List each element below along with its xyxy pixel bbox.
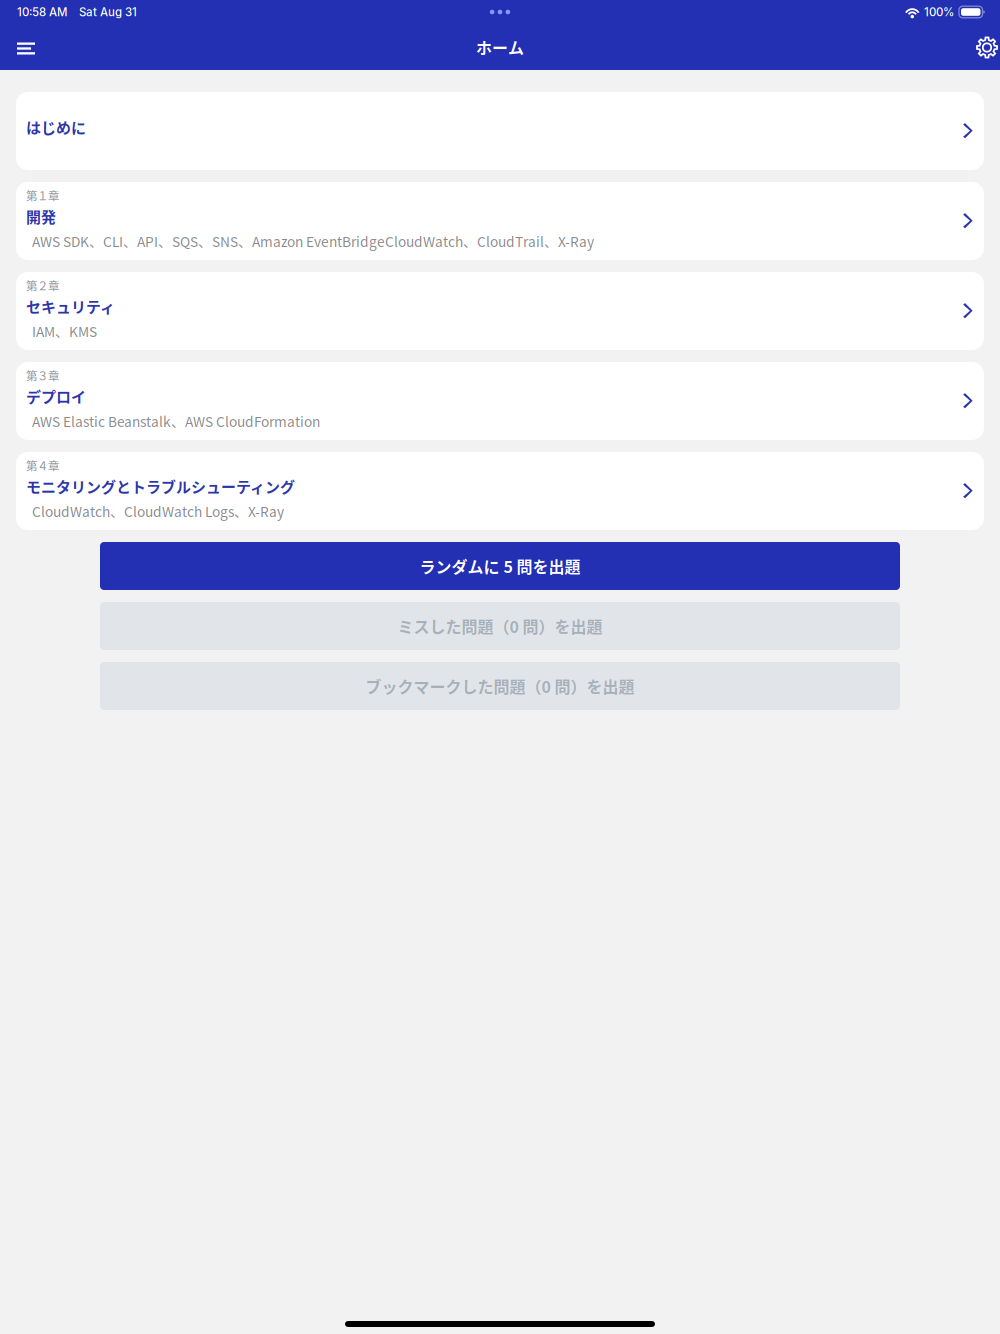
staticText: 第１章	[26, 187, 59, 203]
staticText: ホーム	[476, 35, 524, 59]
staticText: はじめに	[26, 116, 86, 138]
staticText: 第４章	[26, 457, 59, 473]
staticText: CloudWatch、CloudWatch Logs、X-Ray	[32, 501, 284, 521]
staticText: モニタリングとトラブルシューティング	[26, 475, 295, 497]
staticText: 10:58 AM	[17, 5, 67, 19]
button[interactable]: 第３章	[16, 362, 984, 440]
staticText: AWS SDK、CLI、API、SQS、SNS、Amazon EventBrid…	[32, 231, 594, 251]
staticText: Sat Aug 31	[79, 5, 137, 19]
button[interactable]: 第１章	[16, 182, 984, 260]
staticText: デプロイ	[26, 385, 86, 407]
staticText: AWS Elastic Beanstalk、AWS CloudFormation	[32, 411, 320, 431]
button[interactable]: ランダムに 5 問を出題	[100, 542, 900, 590]
staticText: ランダムに 5 問を出題	[419, 554, 580, 578]
button[interactable]: Menu	[3, 24, 49, 70]
staticText: 100%	[924, 5, 954, 19]
staticText: ブックマークした問題（0 問）を出題	[365, 674, 634, 698]
staticText: 第２章	[26, 277, 59, 293]
staticText: 第３章	[26, 367, 59, 383]
button[interactable]: はじめに	[16, 92, 984, 170]
staticText: ミスした問題（0 問）を出題	[397, 614, 602, 638]
staticText: セキュリティ	[26, 295, 115, 317]
staticText: IAM、KMS	[32, 321, 97, 341]
button[interactable]: 第２章	[16, 272, 984, 350]
button[interactable]: ミスした問題（0 問）を出題	[100, 602, 900, 650]
staticText: 開発	[26, 205, 56, 227]
button[interactable]: Settings	[964, 24, 1000, 70]
button[interactable]: ブックマークした問題（0 問）を出題	[100, 662, 900, 710]
button[interactable]: 第４章	[16, 452, 984, 530]
